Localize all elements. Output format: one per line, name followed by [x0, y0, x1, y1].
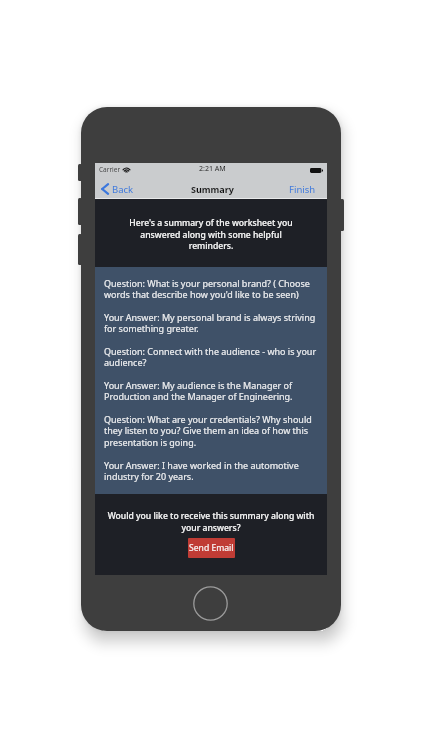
- staticText: 2:21 AM: [199, 164, 226, 174]
- staticText: Summary: [191, 183, 234, 195]
- staticText: Would you like to receive this summary a…: [104, 510, 318, 533]
- button[interactable]: Send Email: [188, 538, 235, 558]
- staticText: Finish: [289, 183, 316, 196]
- staticText: Question: What are your credentials? Why…: [104, 413, 317, 449]
- button[interactable]: Back: [95, 177, 144, 199]
- staticText: Question: Connect with the audience - wh…: [104, 345, 317, 369]
- staticText: Your Answer: My audience is the Manager …: [104, 379, 317, 403]
- staticText: Send Email: [189, 542, 234, 554]
- staticText: Here's a summary of the worksheet you an…: [127, 217, 295, 251]
- button[interactable]: Finish: [279, 177, 327, 199]
- staticText: Back: [112, 183, 134, 196]
- staticText: Your Answer: I have worked in the automo…: [104, 459, 317, 483]
- other: Home: [193, 586, 228, 621]
- staticText: Your Answer: My personal brand is always…: [104, 311, 317, 335]
- staticText: Question: What is your personal brand? (…: [104, 277, 317, 301]
- staticText: Carrier: [99, 165, 121, 174]
